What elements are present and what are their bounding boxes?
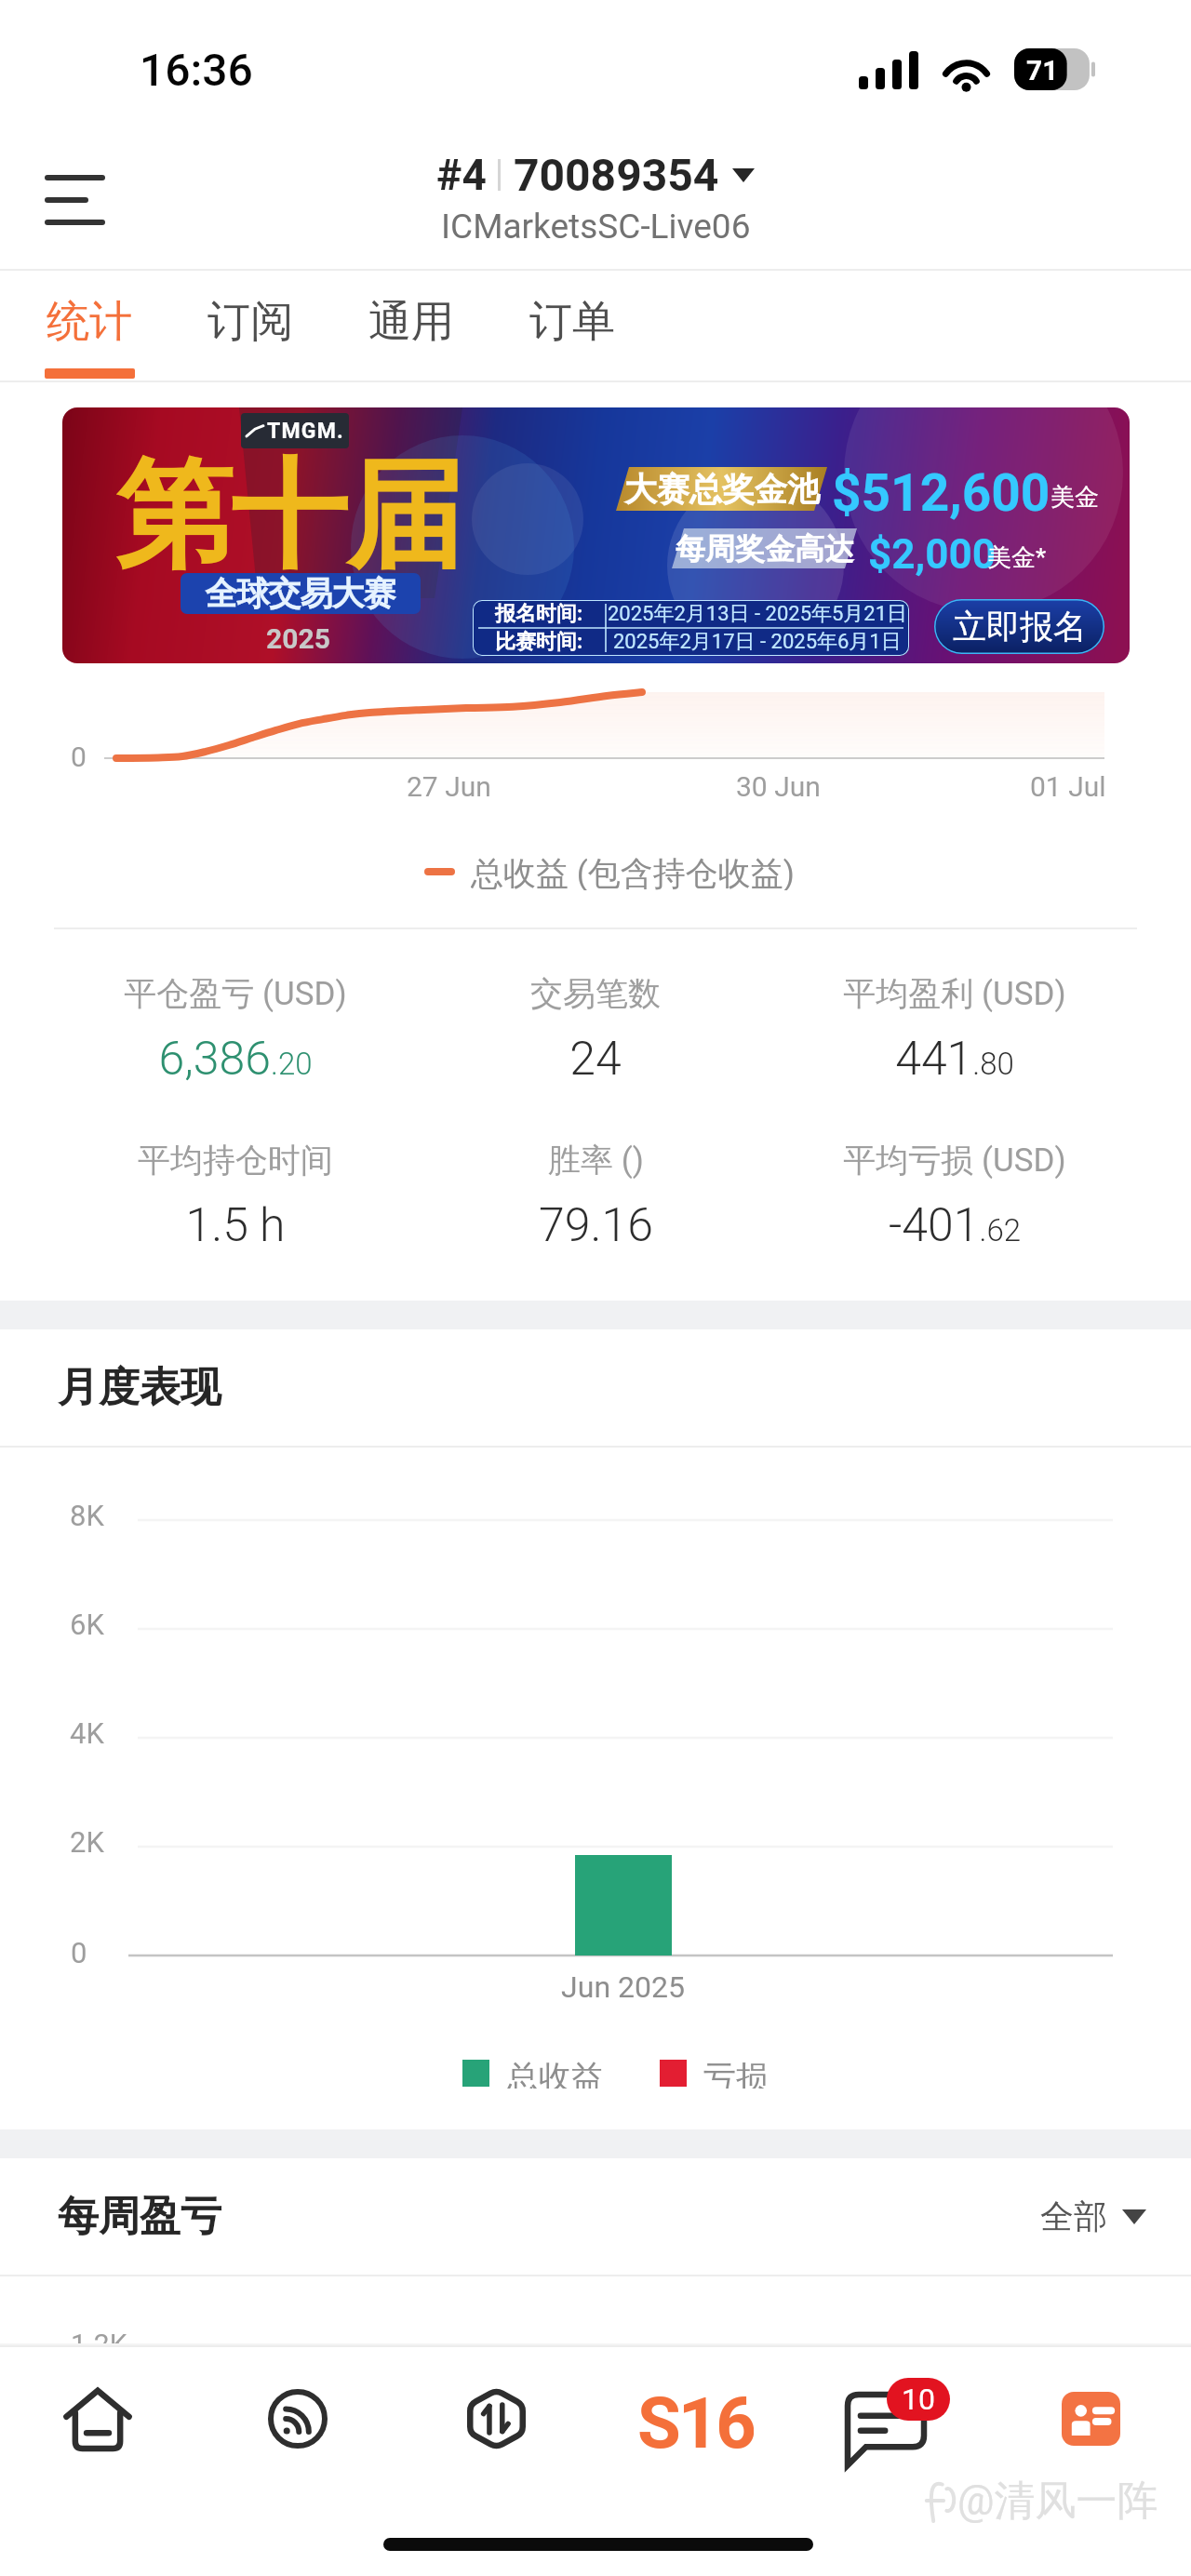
- staticText: 通用: [368, 295, 454, 349]
- staticText: #4: [436, 150, 487, 200]
- button[interactable]: [769, 1123, 1141, 1244]
- staticText: 全球交易大赛: [206, 573, 395, 614]
- button[interactable]: #4: [409, 149, 782, 251]
- button[interactable]: Home: [47, 2368, 149, 2470]
- staticText: 01 Jul: [1030, 770, 1106, 803]
- button[interactable]: 统计: [9, 271, 169, 382]
- staticText: 1.5 h: [185, 1198, 286, 1253]
- button[interactable]: 订阅: [170, 271, 330, 382]
- staticText: 总收益: [506, 2057, 604, 2089]
- button[interactable]: 全部: [1040, 2196, 1146, 2237]
- staticText: 70089354: [514, 149, 719, 201]
- staticText: 平均亏损 (USD): [843, 1140, 1066, 1181]
- staticText: $2,000: [868, 530, 996, 579]
- button[interactable]: Market S16: [635, 2368, 756, 2470]
- button[interactable]: Signals: [247, 2368, 349, 2470]
- staticText: 8K: [70, 1499, 104, 1532]
- staticText: 71: [1026, 54, 1059, 87]
- staticText: 2025年2月17日 - 2025年6月1日: [613, 629, 902, 655]
- staticText: 大赛总奖金池: [624, 469, 820, 510]
- staticText: 胜率 (): [548, 1140, 644, 1181]
- staticText: 统计: [47, 295, 132, 349]
- staticText: 16:36: [140, 44, 253, 96]
- staticText: S16: [637, 2382, 754, 2456]
- staticText: 每周盈亏: [58, 2191, 221, 2242]
- button[interactable]: 立即报名: [934, 599, 1104, 654]
- staticText: 每周奖金高达: [676, 530, 854, 567]
- staticText: @清风一阵: [957, 2476, 1158, 2527]
- staticText: Jun 2025: [561, 1969, 685, 2005]
- staticText: 订阅: [207, 295, 293, 349]
- button[interactable]: Trade: [445, 2368, 547, 2470]
- staticText: 平仓盈亏 (USD): [124, 973, 347, 1014]
- staticText: 79.16: [539, 1198, 653, 1253]
- staticText: 第十届: [116, 443, 462, 591]
- staticText: 0: [71, 741, 87, 773]
- staticText: 美金*: [987, 542, 1047, 573]
- staticText: 报名时间:: [495, 601, 583, 627]
- staticText: 2025: [266, 622, 330, 655]
- button[interactable]: Messages: [842, 2368, 944, 2470]
- staticText: 1.2K: [71, 2328, 127, 2360]
- staticText: 30 Jun: [736, 770, 821, 803]
- staticText: 6,386.20: [158, 1032, 313, 1087]
- staticText: 4K: [70, 1716, 104, 1750]
- staticText: 27 Jun: [407, 770, 491, 803]
- staticText: -401.62: [889, 1198, 1021, 1253]
- staticText: ICMarketsSC-Live06: [441, 207, 751, 247]
- button[interactable]: [49, 956, 422, 1077]
- staticText: 平均盈利 (USD): [843, 973, 1066, 1014]
- staticText: TMGM.: [267, 419, 344, 444]
- staticText: 24: [569, 1032, 622, 1087]
- button[interactable]: [409, 956, 782, 1077]
- staticText: $512,600: [832, 463, 1050, 523]
- staticText: 总收益 (包含持仓收益): [471, 853, 795, 890]
- staticText: 亏损: [703, 2057, 769, 2089]
- staticText: 美金: [1050, 482, 1099, 513]
- button[interactable]: [409, 1123, 782, 1244]
- button[interactable]: 订单: [492, 271, 652, 382]
- button[interactable]: Menu: [26, 144, 125, 228]
- staticText: 441.80: [895, 1032, 1014, 1087]
- button[interactable]: 通用: [331, 271, 491, 382]
- button[interactable]: [769, 956, 1141, 1077]
- staticText: 月度表现: [58, 1362, 221, 1413]
- staticText: 平均持仓时间: [138, 1140, 333, 1181]
- staticText: 交易笔数: [530, 973, 661, 1014]
- button[interactable]: Profile: [1039, 2368, 1142, 2470]
- staticText: 2K: [70, 1825, 104, 1859]
- staticText: 立即报名: [953, 606, 1087, 647]
- staticText: 10: [902, 2382, 935, 2417]
- staticText: 全部: [1040, 2196, 1107, 2237]
- staticText: 比赛时间:: [495, 629, 583, 655]
- staticText: 0: [71, 1936, 87, 1969]
- staticText: 2025年2月13日 - 2025年5月21日: [608, 601, 908, 627]
- button[interactable]: [49, 1123, 422, 1244]
- staticText: 订单: [529, 295, 615, 349]
- staticText: 6K: [70, 1608, 104, 1641]
- button[interactable]: TMGM 第十届全球交易大赛 广告: [62, 407, 1130, 663]
